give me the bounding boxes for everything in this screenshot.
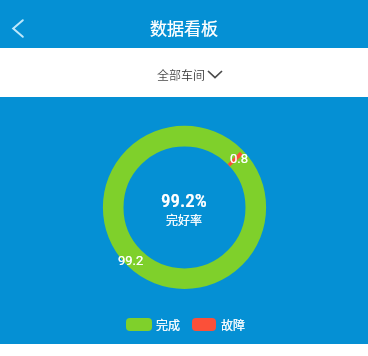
button[interactable]: Back: [0, 6, 40, 50]
staticText: 0.8: [230, 151, 249, 166]
staticText: 完好率: [166, 211, 203, 228]
staticText: 数据看板: [150, 15, 218, 40]
button[interactable]: 完成: [126, 316, 181, 333]
staticText: 全部车间: [157, 66, 206, 83]
button[interactable]: 故障: [192, 316, 246, 333]
staticText: 故障: [221, 316, 246, 333]
staticText: 完成: [156, 316, 181, 333]
staticText: 99.2: [118, 253, 144, 268]
staticText: 99.2%: [161, 189, 207, 211]
button[interactable]: 全部车间: [157, 66, 223, 83]
